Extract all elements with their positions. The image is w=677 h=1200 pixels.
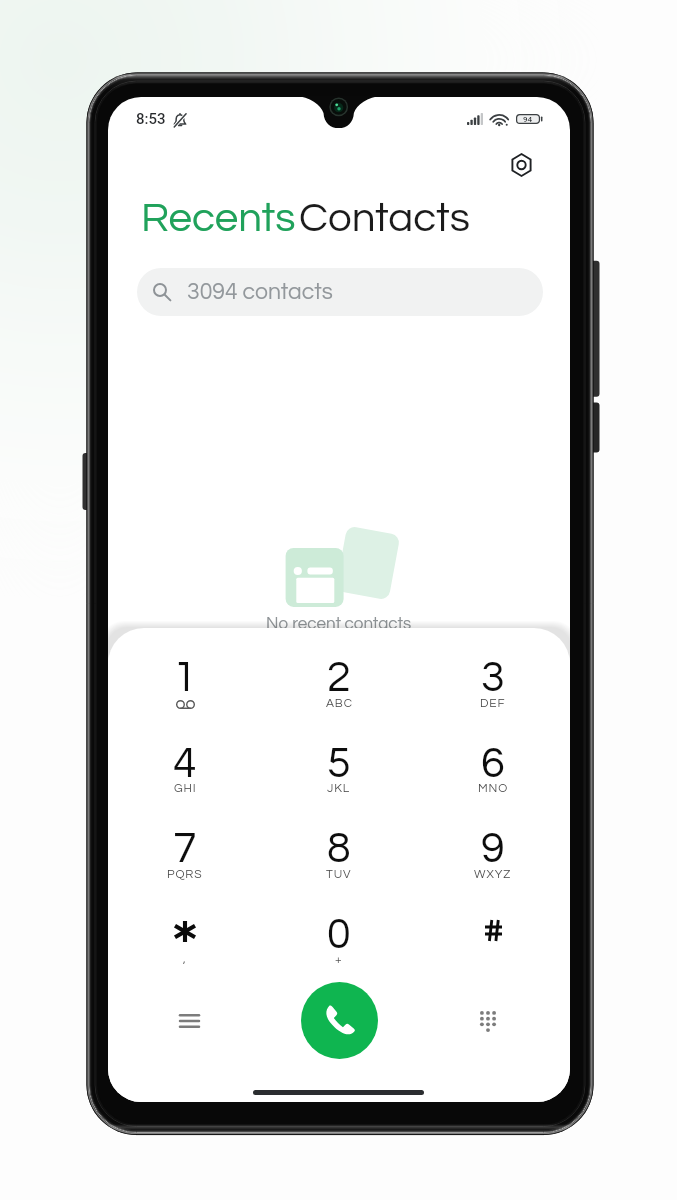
button[interactable]: 7 bbox=[139, 817, 231, 881]
staticText: 2 bbox=[327, 656, 351, 700]
button[interactable]: 4 bbox=[139, 732, 231, 796]
staticText: PQRS bbox=[167, 868, 203, 880]
staticText: 7 bbox=[173, 827, 197, 871]
staticText: JKL bbox=[327, 782, 351, 794]
button[interactable]: 6 bbox=[447, 732, 539, 796]
staticText: ABC bbox=[326, 697, 353, 709]
button[interactable] bbox=[139, 903, 231, 967]
button[interactable] bbox=[447, 903, 539, 967]
staticText: WXYZ bbox=[474, 868, 512, 880]
staticText: 8 bbox=[327, 827, 351, 871]
staticText: 3094 contacts bbox=[187, 280, 333, 304]
button[interactable]: 3094 contacts bbox=[137, 268, 543, 316]
button[interactable]: Dialpad bbox=[460, 993, 516, 1049]
staticText: 9 bbox=[481, 827, 505, 871]
button[interactable]: Call history bbox=[161, 993, 217, 1049]
staticText: 4 bbox=[173, 742, 197, 786]
staticText: TUV bbox=[326, 868, 352, 880]
staticText: No recent contacts bbox=[266, 615, 412, 633]
button[interactable]: Settings bbox=[499, 143, 543, 187]
staticText: 94 bbox=[523, 115, 533, 124]
staticText: Contacts bbox=[299, 197, 470, 240]
button[interactable]: Call bbox=[301, 982, 378, 1059]
staticText: 3 bbox=[481, 656, 505, 700]
button[interactable]: 1 bbox=[139, 646, 231, 710]
staticText: MNO bbox=[478, 782, 509, 794]
staticText: Recents bbox=[141, 197, 296, 240]
staticText: 1 bbox=[173, 656, 197, 700]
staticText: 0 bbox=[327, 913, 351, 957]
staticText: DEF bbox=[480, 697, 506, 709]
staticText: , bbox=[183, 953, 187, 965]
button[interactable]: 5 bbox=[293, 732, 385, 796]
staticText: 5 bbox=[327, 742, 351, 786]
staticText: 6 bbox=[481, 742, 505, 786]
button[interactable]: 0 bbox=[293, 903, 385, 967]
button[interactable]: 2 bbox=[293, 646, 385, 710]
staticText: + bbox=[335, 953, 343, 965]
button[interactable]: 8 bbox=[293, 817, 385, 881]
button[interactable]: 9 bbox=[447, 817, 539, 881]
staticText: GHI bbox=[174, 782, 197, 794]
staticText: 8:53 bbox=[136, 110, 166, 128]
button[interactable]: 3 bbox=[447, 646, 539, 710]
